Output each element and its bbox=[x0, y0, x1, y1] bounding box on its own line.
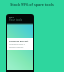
staticText: 4:41 bbox=[9, 15, 14, 18]
staticText: Available from 4 nearby depots bbox=[9, 43, 31, 49]
staticText: Cordless drill kit bbox=[9, 39, 29, 42]
staticText: Stock 99% of spare tools bbox=[3, 2, 61, 7]
staticText: Your tools bbox=[9, 18, 23, 22]
button[interactable]: Cordless drill kit bbox=[7, 38, 33, 50]
